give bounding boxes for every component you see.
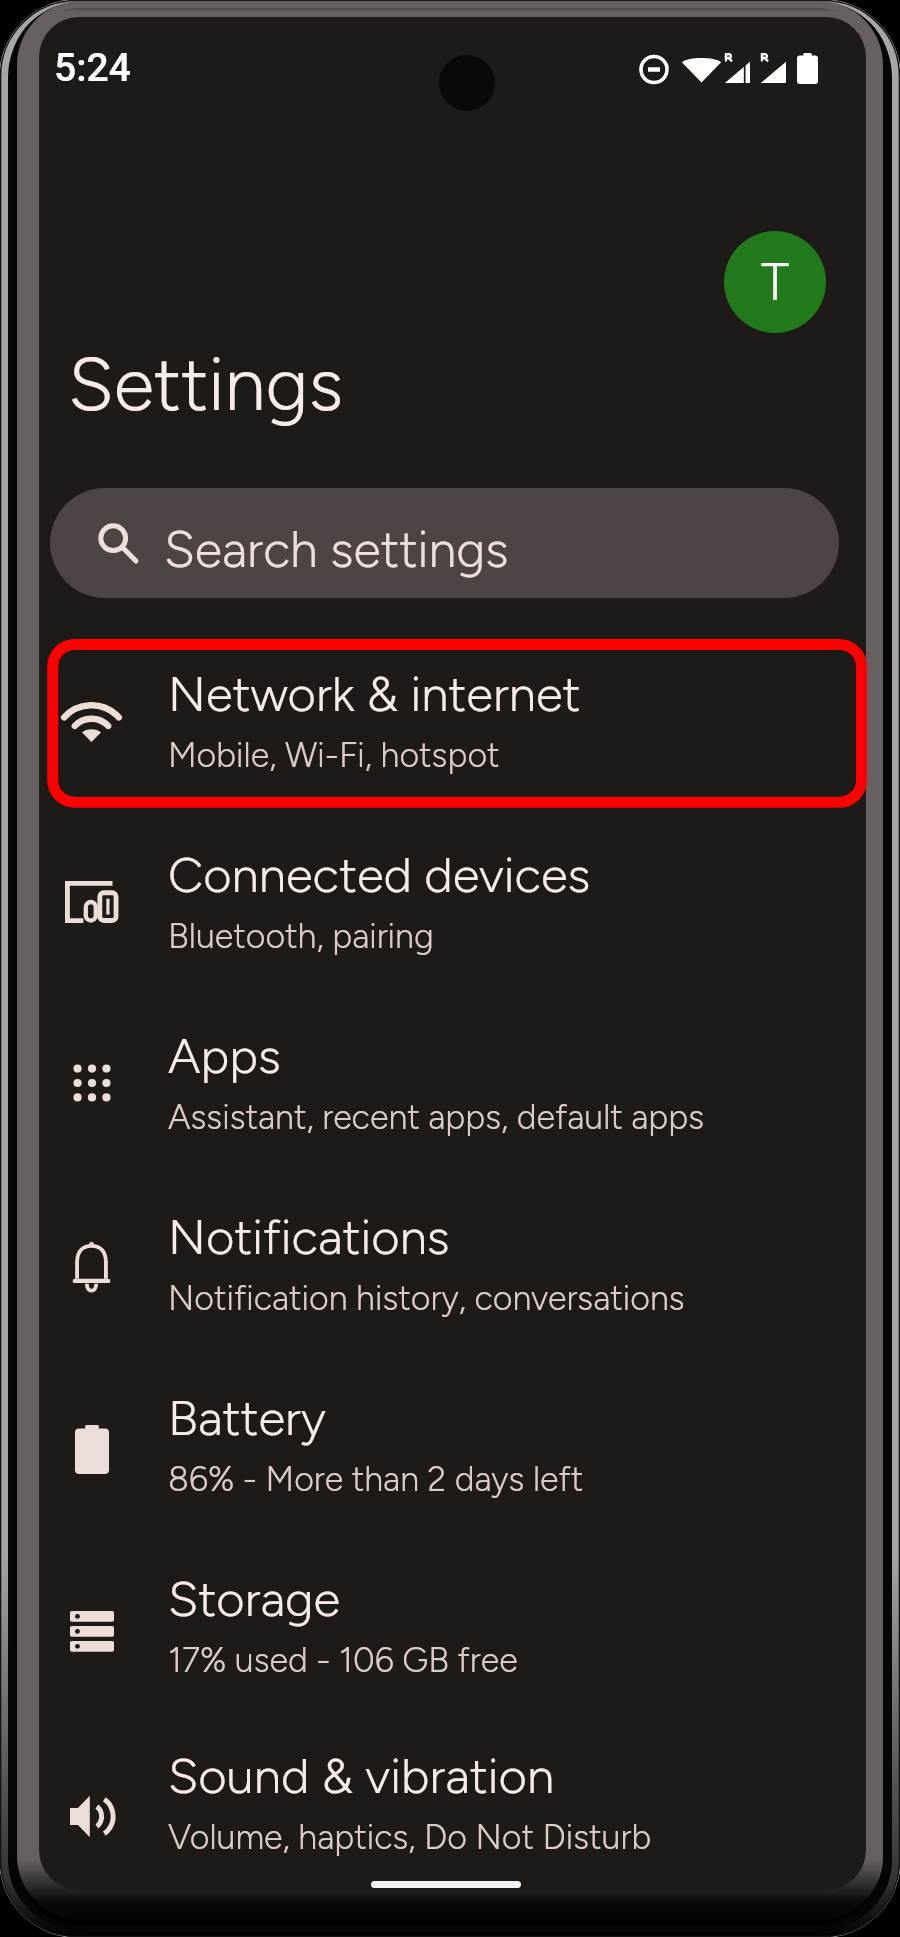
staticText: 5:24	[54, 45, 131, 91]
staticText: Battery	[168, 1388, 326, 1447]
staticText: Search settings	[164, 519, 509, 579]
staticText: Mobile, Wi-Fi, hotspot	[168, 735, 500, 776]
button[interactable]: Sound & vibration	[39, 1717, 866, 1890]
staticText: Apps	[168, 1026, 281, 1085]
staticText: Notification history, conversations	[168, 1278, 685, 1319]
staticText: T	[761, 251, 790, 313]
button[interactable]: Search settings	[50, 488, 839, 598]
button[interactable]: Notifications	[39, 1174, 866, 1355]
staticText: Sound & vibration	[168, 1746, 555, 1805]
staticText: Settings	[68, 340, 344, 429]
staticText: Network & internet	[168, 664, 581, 723]
button[interactable]: Storage	[39, 1536, 866, 1717]
staticText: Notifications	[168, 1207, 450, 1266]
button[interactable]: Account	[724, 231, 826, 333]
button[interactable]: Network & internet	[39, 631, 866, 812]
staticText: Bluetooth, pairing	[168, 916, 434, 957]
staticText: 86% - More than 2 days left	[168, 1459, 584, 1500]
button[interactable]: Connected devices	[39, 812, 866, 993]
staticText: Assistant, recent apps, default apps	[168, 1097, 705, 1138]
staticText: Connected devices	[168, 845, 591, 904]
button[interactable]: Apps	[39, 993, 866, 1174]
button[interactable]: Battery	[39, 1355, 866, 1536]
staticText: Storage	[168, 1569, 341, 1628]
staticText: Volume, haptics, Do Not Disturb	[168, 1817, 652, 1858]
staticText: 17% used - 106 GB free	[168, 1640, 518, 1681]
